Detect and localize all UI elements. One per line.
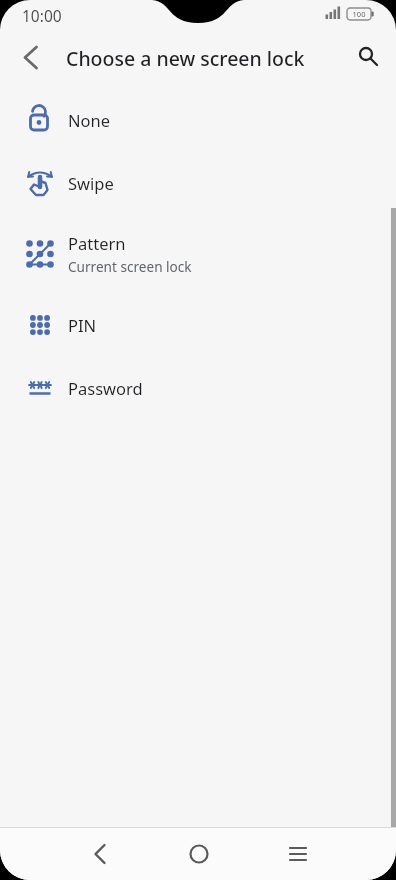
- button[interactable]: Swipe: [0, 151, 396, 214]
- button[interactable]: None: [0, 88, 396, 151]
- staticText: 10:00: [22, 5, 62, 26]
- button[interactable]: Pattern: [0, 214, 396, 293]
- staticText: Password: [68, 377, 143, 399]
- button[interactable]: PIN: [0, 293, 396, 356]
- staticText: Choose a new screen lock: [66, 45, 305, 72]
- button[interactable]: [149, 827, 248, 880]
- button[interactable]: [248, 827, 347, 880]
- staticText: None: [68, 109, 111, 131]
- button[interactable]: Password: [0, 356, 396, 419]
- button[interactable]: [12, 39, 48, 75]
- staticText: PIN: [68, 314, 97, 336]
- staticText: Current screen lock: [68, 257, 192, 276]
- staticText: 100: [347, 9, 371, 19]
- staticText: Pattern: [68, 232, 126, 254]
- staticText: Swipe: [68, 172, 114, 194]
- button[interactable]: [50, 827, 149, 880]
- button[interactable]: [349, 37, 385, 73]
